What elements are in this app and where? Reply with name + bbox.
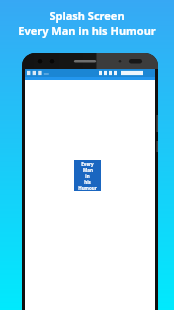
staticText: Every xyxy=(81,161,94,167)
staticText: Splash Screen xyxy=(49,8,125,23)
button[interactable]: Every Man in his Humour splash xyxy=(74,160,101,191)
staticText: his xyxy=(84,179,91,185)
staticText: Man xyxy=(83,167,93,173)
staticText: Humour xyxy=(78,185,97,190)
staticText: Every Man in his Humour xyxy=(18,23,156,38)
staticText: in xyxy=(85,173,90,179)
